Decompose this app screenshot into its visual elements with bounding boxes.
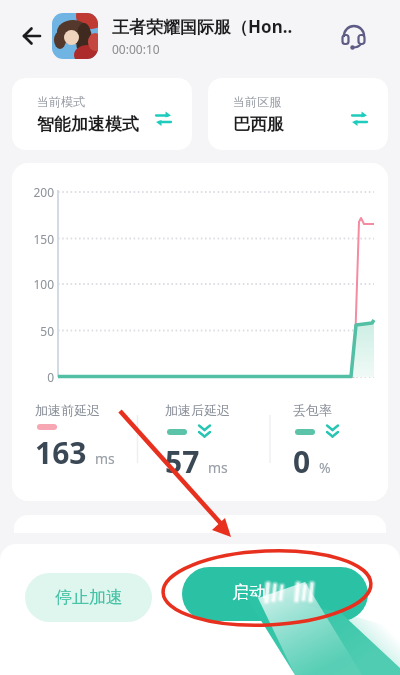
staticText: 停止加速 — [55, 587, 123, 608]
staticText: 丢包率 — [293, 402, 332, 418]
button[interactable]: 当前模式 — [12, 78, 192, 150]
staticText: 启动 — [232, 582, 266, 603]
staticText: 57 — [165, 441, 200, 482]
button[interactable]: 启动 — [182, 567, 368, 621]
staticText: 当前模式 — [37, 94, 85, 109]
staticText: 163 — [35, 432, 87, 473]
staticText: 0 — [47, 369, 54, 385]
staticText: % — [319, 458, 331, 477]
staticText: 100 — [33, 276, 54, 292]
staticText: 50 — [40, 323, 54, 339]
staticText: ms — [95, 449, 115, 468]
staticText: 王者荣耀国际服（Hon.. — [112, 15, 293, 38]
staticText: 当前区服 — [233, 94, 281, 109]
staticText: 智能加速模式 — [37, 114, 139, 135]
staticText: 150 — [33, 231, 54, 247]
staticText: 加速前延迟 — [35, 402, 100, 418]
staticText: 0 — [293, 441, 311, 482]
button[interactable]: 当前区服 — [208, 78, 388, 150]
staticText: 加速后延迟 — [165, 402, 230, 418]
button[interactable] — [334, 16, 374, 56]
staticText: 200 — [33, 184, 54, 200]
staticText: ms — [208, 458, 228, 477]
staticText: 00:00:10 — [112, 41, 160, 57]
button[interactable]: 停止加速 — [25, 573, 152, 622]
button[interactable] — [12, 16, 52, 56]
staticText: 巴西服 — [233, 114, 284, 135]
